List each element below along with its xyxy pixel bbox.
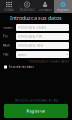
- staticText: Pin: [3, 35, 8, 38]
- staticText: Recordar mis datos: [8, 65, 33, 69]
- button[interactable]: Registro: [54, 0, 72, 13]
- staticText: Usuario: [3, 26, 13, 29]
- button[interactable]: Registrar: [4, 104, 68, 118]
- button[interactable]: Contactos: [36, 0, 54, 13]
- staticText: ¿No tiene cuenta? Darse de alta: [14, 99, 57, 102]
- staticText: Teclado: [4, 8, 14, 11]
- staticText: Recientes: [20, 8, 34, 11]
- button[interactable]: Introduzca su móvil: [16, 42, 69, 49]
- button[interactable]: ¿No tiene cuenta? Darse de alta: [0, 97, 72, 104]
- staticText: ▾: [66, 53, 67, 56]
- button[interactable]: Recordar mis datos: [0, 64, 72, 70]
- button[interactable]: Introduzca su PIN: [16, 33, 69, 40]
- staticText: * Introduzca un usuario válido: [28, 60, 69, 63]
- button[interactable]: Teclado: [0, 0, 18, 13]
- staticText: Introduzca sus datos: [10, 14, 62, 22]
- staticText: Introduzca su usuario: [17, 26, 46, 29]
- staticText: Móvil: [3, 44, 10, 47]
- button[interactable]: Introduzca su usuario: [16, 24, 69, 31]
- staticText: Introduzca su móvil: [17, 44, 43, 47]
- staticText: Introduzca su PIN: [17, 35, 41, 38]
- button[interactable]: Recientes: [18, 0, 36, 13]
- staticText: Contactos: [38, 8, 51, 11]
- staticText: Registrar: [26, 108, 45, 114]
- button[interactable]: España: [16, 51, 69, 58]
- staticText: País: [3, 53, 8, 56]
- staticText: Registro: [57, 8, 69, 11]
- staticText: España: [17, 53, 25, 56]
